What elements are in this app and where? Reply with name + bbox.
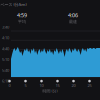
staticText: 時間 (分): [42, 88, 57, 94]
staticText: 15: [55, 83, 59, 88]
staticText: 4:06: [68, 12, 78, 19]
staticText: 5:10: [2, 57, 9, 62]
staticText: 10: [39, 83, 43, 88]
staticText: 6:10: [2, 78, 9, 84]
staticText: 5: [24, 83, 26, 88]
staticText: 3:40: [2, 24, 9, 30]
staticText: 平均: [18, 19, 26, 24]
staticText: 最速: [69, 19, 77, 24]
staticText: 25: [87, 83, 91, 88]
staticText: 4:40: [2, 46, 9, 51]
staticText: 5:40: [2, 68, 9, 73]
staticText: 0: [8, 83, 10, 88]
staticText: 20: [71, 83, 75, 88]
staticText: 4:10: [2, 35, 9, 40]
staticText: ペース (分/km): [0, 2, 26, 7]
staticText: 4:59: [17, 12, 27, 19]
